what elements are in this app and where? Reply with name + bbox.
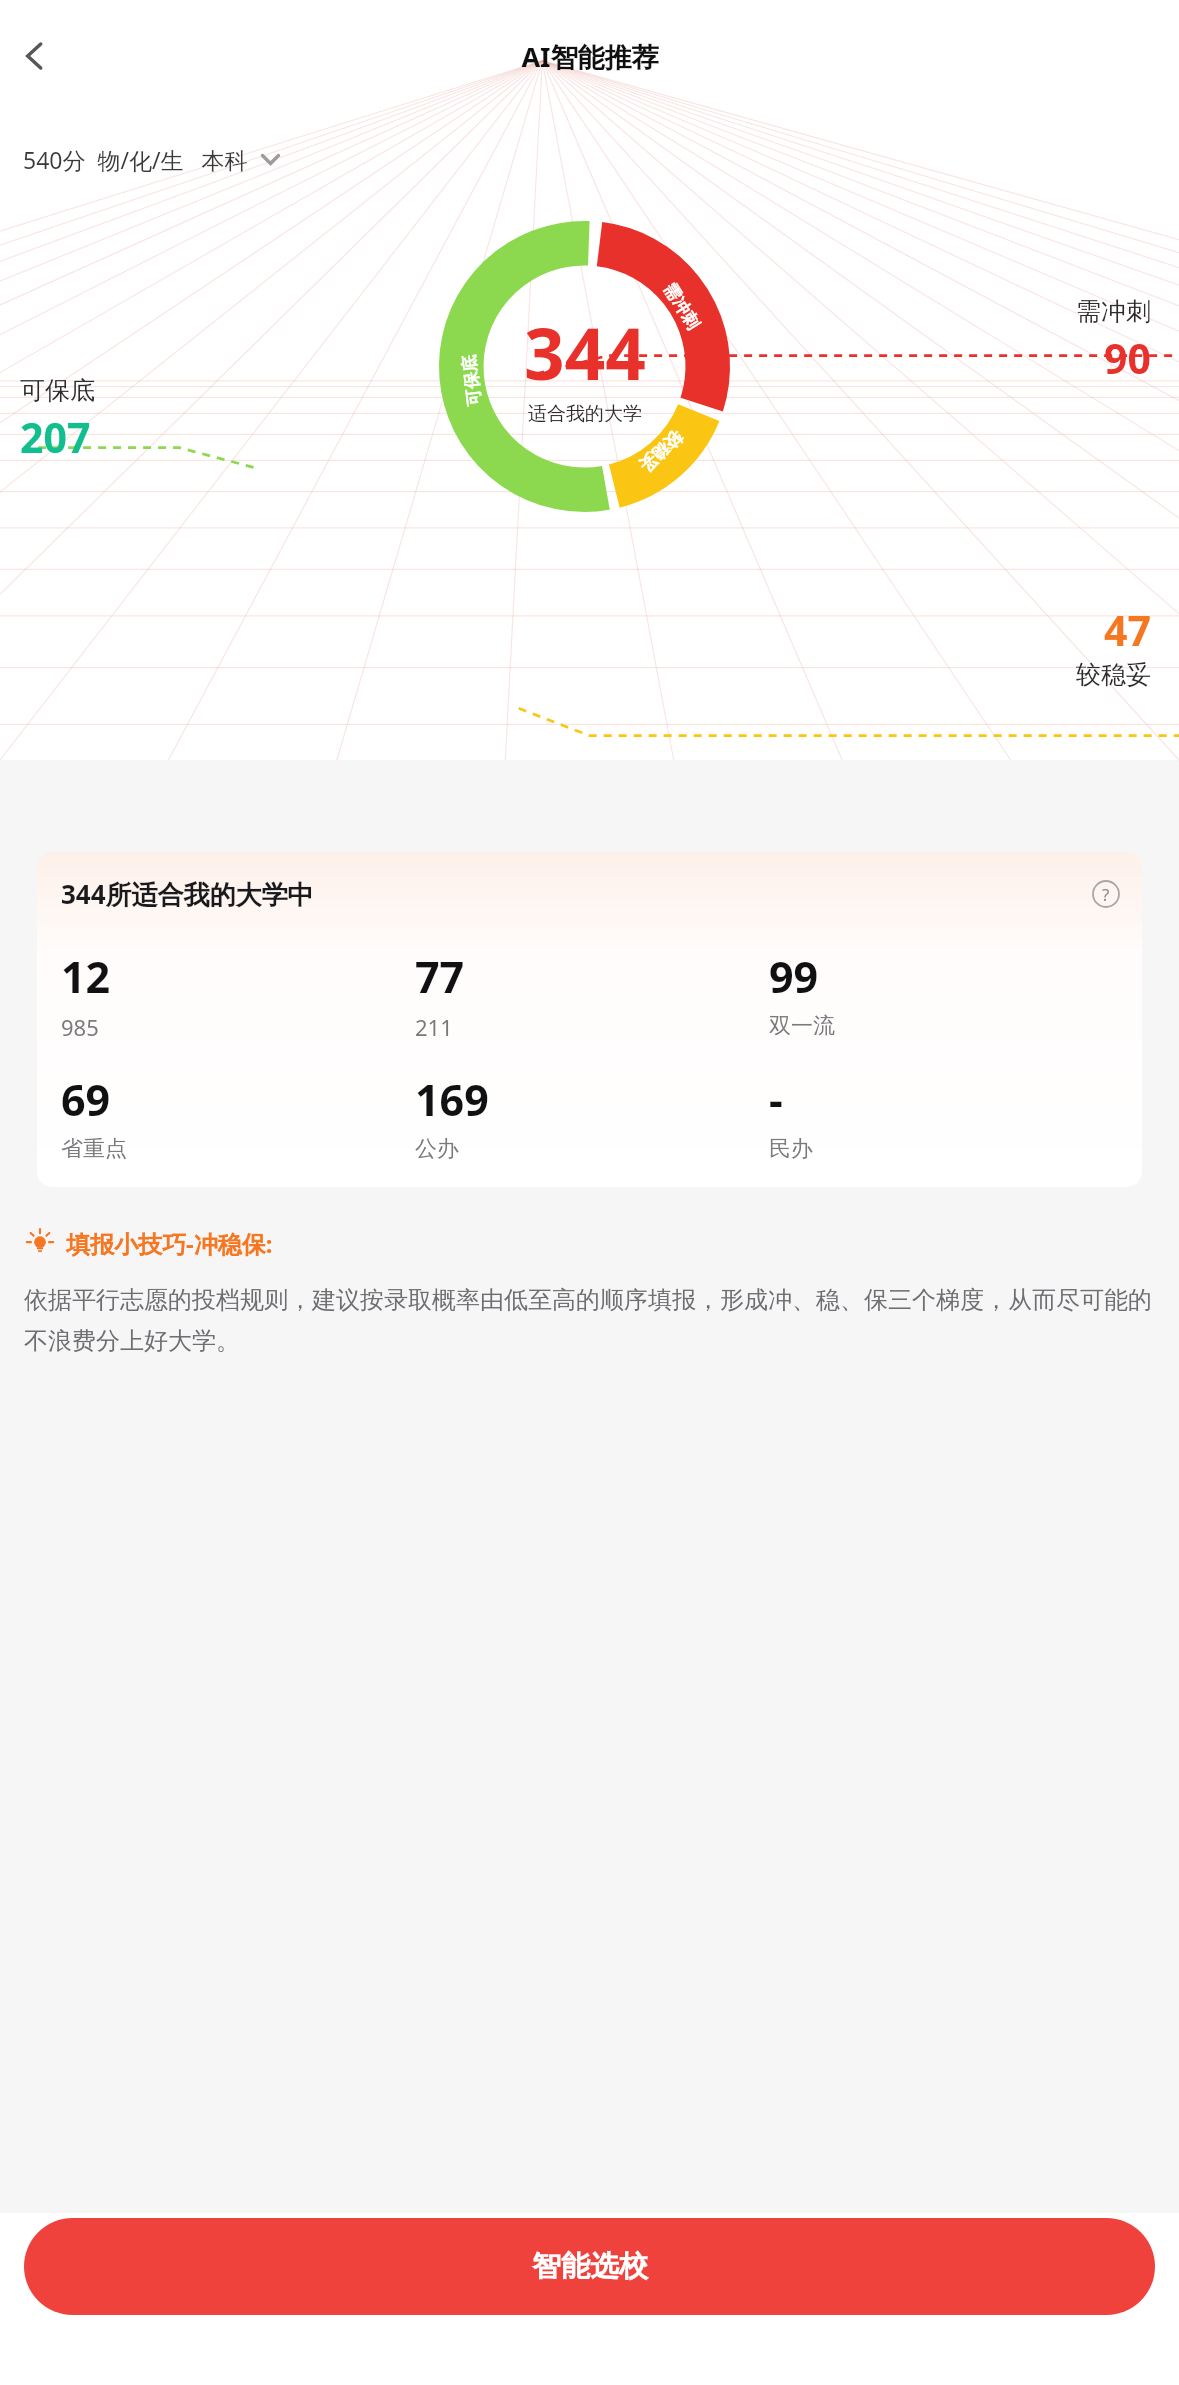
staticText: 12 (61, 947, 111, 1006)
staticText: 47 (1104, 602, 1151, 658)
staticText: 211 (415, 1012, 453, 1042)
staticText: 540分 物/化/生 本科 (23, 144, 248, 175)
staticText: 填报小技巧-冲稳保: (66, 1227, 273, 1260)
staticText: 344 (524, 304, 646, 401)
staticText: 双一流 (769, 1012, 835, 1040)
staticText: 69 (61, 1070, 111, 1129)
staticText: - (769, 1070, 783, 1129)
staticText: 智能选校 (532, 2248, 648, 2285)
staticText: 适合我的大学 (528, 402, 642, 426)
staticText: 民办 (769, 1135, 813, 1163)
staticText: 77 (415, 947, 465, 1006)
button[interactable]: 智能选校 (24, 2218, 1155, 2315)
staticText: 90 (1104, 330, 1151, 386)
staticText: 344所适合我的大学中 (61, 876, 314, 912)
staticText: 99 (769, 947, 819, 1006)
button[interactable]: Back (6, 27, 64, 85)
staticText: 169 (415, 1070, 489, 1129)
staticText: 207 (20, 409, 91, 465)
button[interactable]: 帮助说明 (1089, 877, 1123, 911)
staticText: ? (1102, 883, 1110, 906)
staticText: 需冲刺 (659, 279, 704, 334)
staticText: 依据平行志愿的投档规则，建议按录取概率由低至高的顺序填报，形成冲、稳、保三个梯度… (24, 1285, 1155, 1356)
button[interactable]: 540分 物/化/生 本科 (18, 138, 285, 181)
staticText: 较稳妥 (1076, 659, 1151, 690)
staticText: 公办 (415, 1135, 459, 1163)
staticText: 较稳妥 (634, 427, 686, 476)
staticText: 可保底 (458, 354, 485, 407)
staticText: 省重点 (61, 1135, 127, 1163)
staticText: 需冲刺 (1076, 296, 1151, 327)
staticText: 985 (61, 1012, 99, 1042)
staticText: AI智能推荐 (521, 38, 659, 75)
staticText: 可保底 (20, 375, 95, 406)
